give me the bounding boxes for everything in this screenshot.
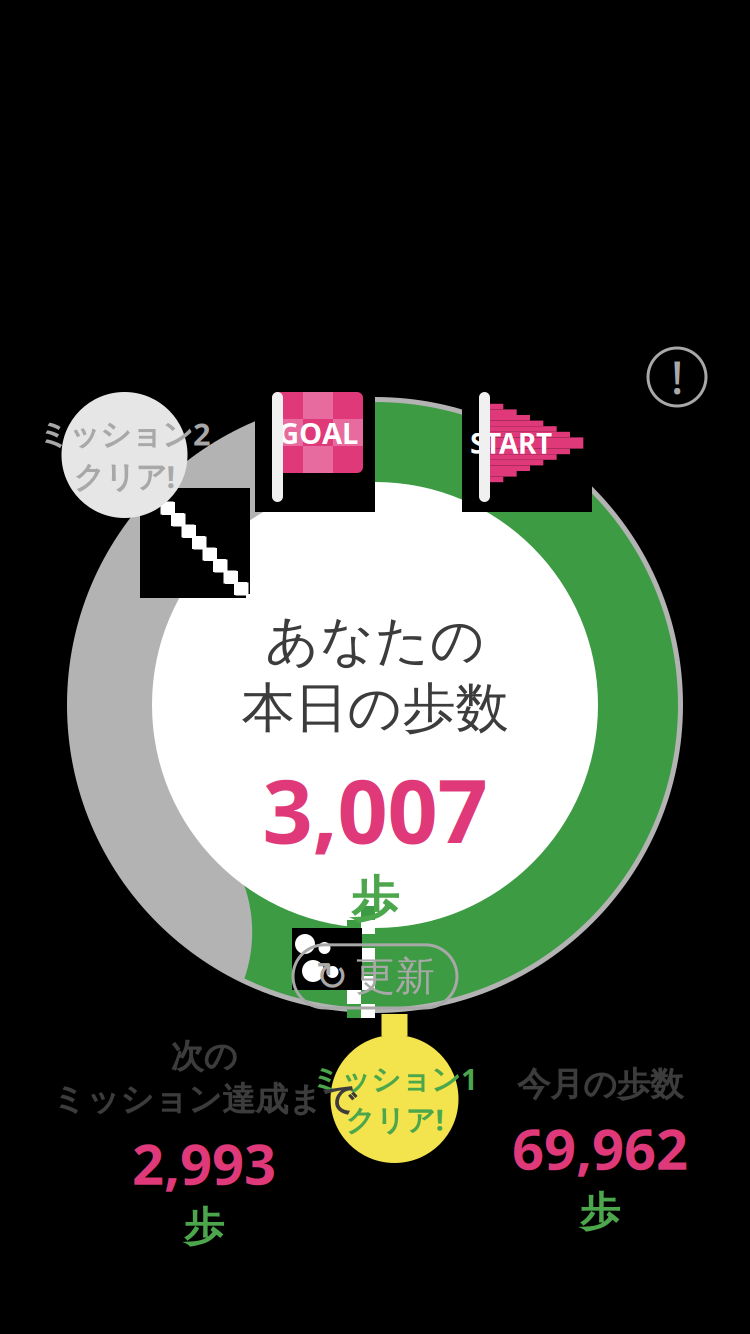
staticText: ! <box>671 347 683 407</box>
staticText: 今月の歩数 <box>517 1064 683 1105</box>
staticText: クリア! <box>345 1100 443 1139</box>
staticText: 歩 <box>184 1202 224 1251</box>
button[interactable]: データ残量 <box>150 1234 300 1334</box>
staticText: クリア! <box>73 456 175 497</box>
staticText: 69,962 <box>512 1111 688 1185</box>
staticText: あなたの <box>265 608 485 673</box>
staticText: START <box>470 424 552 462</box>
button[interactable]: ↻ <box>293 945 457 1008</box>
staticText: 更新 <box>355 952 435 1001</box>
staticText: 次の <box>170 1036 237 1077</box>
button[interactable]: ミッション2 <box>383 260 720 354</box>
staticText: ミッション1 <box>311 1059 478 1098</box>
staticText: ミッション達成まで <box>52 1079 356 1120</box>
button[interactable]: 説明 <box>648 348 706 406</box>
staticText: GOAL <box>278 413 358 452</box>
staticText: 本日の歩数 <box>241 675 508 741</box>
staticText: 2,993 <box>132 1126 276 1200</box>
staticText: 歩 <box>580 1187 620 1236</box>
staticText: 3,007 <box>262 751 487 868</box>
staticText: ミッション2 <box>38 413 211 454</box>
staticText: ↻ <box>315 954 349 999</box>
staticText: 歩 <box>351 870 399 929</box>
